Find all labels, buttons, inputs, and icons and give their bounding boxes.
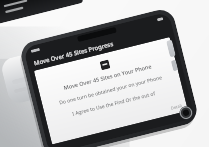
staticText: Move Over 45 Sites on Your Phone — [63, 62, 153, 91]
staticText: Move Over 45 Sites Progress — [33, 40, 115, 67]
other: App icon — [100, 59, 110, 70]
button[interactable]: Move Over 45 Sites Progress — [26, 22, 174, 72]
button[interactable]: App icon — [34, 37, 188, 145]
staticText: I Agree to Use the Find Or the out of — [72, 90, 157, 118]
staticText: Detail — [170, 103, 182, 111]
staticText: Do one turn be obtained your on your Pho… — [58, 74, 163, 106]
